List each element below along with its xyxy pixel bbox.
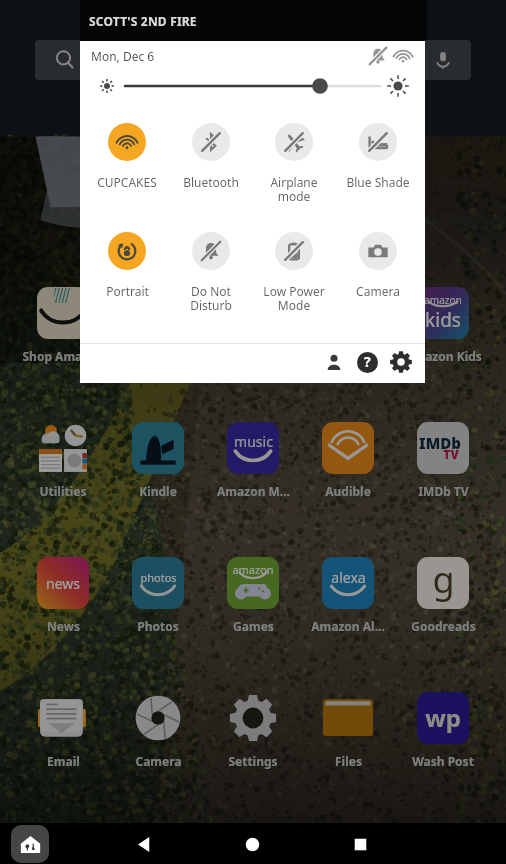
button[interactable]: Audible [306, 422, 390, 499]
staticText: Goodreads [411, 618, 476, 634]
staticText: Shop Amazon [22, 348, 104, 364]
staticText: ? [364, 352, 371, 371]
button[interactable]: music [211, 422, 295, 499]
staticText: IMDb TV [418, 483, 469, 499]
staticText: Games [233, 618, 274, 634]
button[interactable]: Airplane mode [253, 123, 335, 205]
staticText: wp [425, 701, 461, 734]
button[interactable]: Kindle [116, 422, 200, 499]
button[interactable]: Home shortcut [11, 825, 49, 863]
button[interactable]: Do Not Disturb [170, 232, 252, 314]
staticText: Wash Post [412, 753, 474, 769]
button[interactable]: alexa [306, 557, 390, 634]
staticText: IMDb [419, 433, 461, 453]
button[interactable]: wp [401, 692, 485, 769]
button[interactable]: g [401, 557, 485, 634]
staticText: Kindle [139, 483, 177, 499]
button[interactable]: Settings [385, 346, 417, 378]
staticText: Low Power Mode [263, 283, 325, 314]
staticText: news [46, 574, 80, 593]
button[interactable]: Bluetooth [170, 123, 252, 190]
staticText: Airplane mode [270, 174, 318, 205]
button[interactable]: Settings [211, 692, 295, 769]
staticText: amazon [232, 562, 274, 577]
staticText: Do Not Disturb [190, 283, 232, 314]
button[interactable]: Search [35, 40, 471, 80]
button[interactable]: amazon [211, 557, 295, 634]
button[interactable]: Camera [116, 692, 200, 769]
staticText: Settings [228, 753, 278, 769]
button[interactable]: Blue Shade [337, 123, 419, 190]
staticText: Audible [325, 483, 371, 499]
staticText: Camera [135, 753, 182, 769]
button[interactable]: amazon [401, 287, 485, 364]
staticText: Bluetooth [183, 174, 239, 190]
staticText: Portrait [106, 283, 149, 299]
staticText: music [234, 432, 273, 451]
button[interactable]: photos [116, 557, 200, 634]
button[interactable]: Low Power Mode [253, 232, 335, 314]
staticText: SCOTT'S 2ND FIRE [89, 13, 197, 29]
staticText: Amazon Kids [405, 348, 482, 364]
button[interactable]: Files [306, 692, 390, 769]
staticText: News [47, 618, 80, 634]
button[interactable]: CUPCAKES [86, 123, 168, 190]
staticText: Files [335, 753, 362, 769]
staticText: g [432, 555, 455, 604]
staticText: amazon [424, 293, 462, 307]
button[interactable]: Home [234, 826, 270, 862]
button[interactable]: Help [351, 346, 383, 378]
button[interactable]: Camera [337, 232, 419, 299]
staticText: TV [443, 446, 459, 462]
staticText: Blue Shade [346, 174, 410, 190]
button[interactable]: Email [21, 692, 105, 769]
button[interactable]: Notifications off [368, 46, 388, 66]
staticText: Email [47, 753, 80, 769]
button[interactable]: Recents [342, 826, 378, 862]
button[interactable]: news [21, 557, 105, 634]
staticText: Camera [356, 283, 400, 299]
staticText: Photos [137, 618, 179, 634]
button[interactable]: Shop Amazon [21, 287, 105, 364]
button[interactable]: Portrait [86, 232, 168, 299]
staticText: alexa [331, 568, 366, 587]
staticText: Mon, Dec 6 [91, 48, 155, 64]
button[interactable]: Back [126, 826, 162, 862]
staticText: CUPCAKES [97, 174, 157, 190]
button[interactable]: Utilities [21, 422, 105, 499]
button[interactable]: Wi-Fi [393, 46, 413, 66]
staticText: Amazon Al... [311, 618, 385, 634]
button[interactable]: Profile [318, 346, 350, 378]
staticText: Amazon M... [217, 483, 290, 499]
button[interactable]: IMDb [401, 422, 485, 499]
staticText: photos [140, 570, 177, 585]
staticText: kids [425, 307, 461, 333]
staticText: Utilities [39, 483, 87, 499]
